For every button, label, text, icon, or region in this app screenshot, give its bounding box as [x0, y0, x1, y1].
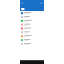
button[interactable]: [20, 34, 44, 38]
button[interactable]: [20, 15, 44, 19]
button[interactable]: [20, 11, 44, 15]
button[interactable]: [20, 23, 44, 27]
button[interactable]: [20, 38, 44, 42]
button[interactable]: [20, 27, 44, 30]
button[interactable]: [20, 42, 44, 46]
button[interactable]: [20, 19, 44, 23]
button[interactable]: [20, 30, 44, 34]
